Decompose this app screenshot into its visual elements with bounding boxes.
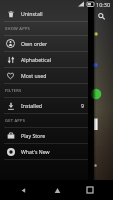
button[interactable]: Own order: [0, 36, 88, 51]
staticText: What's New: [21, 148, 50, 155]
staticText: Uninstall: [21, 10, 43, 17]
button[interactable]: Back: [13, 180, 33, 200]
staticText: GET APPS: [5, 118, 26, 123]
button[interactable]: Uninstall: [0, 6, 88, 21]
button[interactable]: Home: [47, 180, 67, 200]
staticText: Most used: [21, 72, 47, 79]
staticText: FILTERS: [5, 88, 22, 93]
staticText: Play Store: [21, 132, 46, 139]
button[interactable]: What's New: [0, 144, 88, 159]
button[interactable]: Play Store: [0, 128, 88, 143]
staticText: Own order: [21, 40, 48, 47]
button[interactable]: Recents: [80, 180, 100, 200]
staticText: Alphabetical: [21, 56, 52, 63]
staticText: Installed: [21, 102, 43, 109]
button[interactable]: Alphabetical: [0, 52, 88, 67]
button[interactable]: Installed: [0, 98, 88, 113]
button[interactable]: Most used: [0, 68, 88, 83]
staticText: 9: [81, 102, 84, 109]
staticText: 10:30: [96, 1, 111, 8]
staticText: SHOW APPS: [5, 26, 31, 31]
